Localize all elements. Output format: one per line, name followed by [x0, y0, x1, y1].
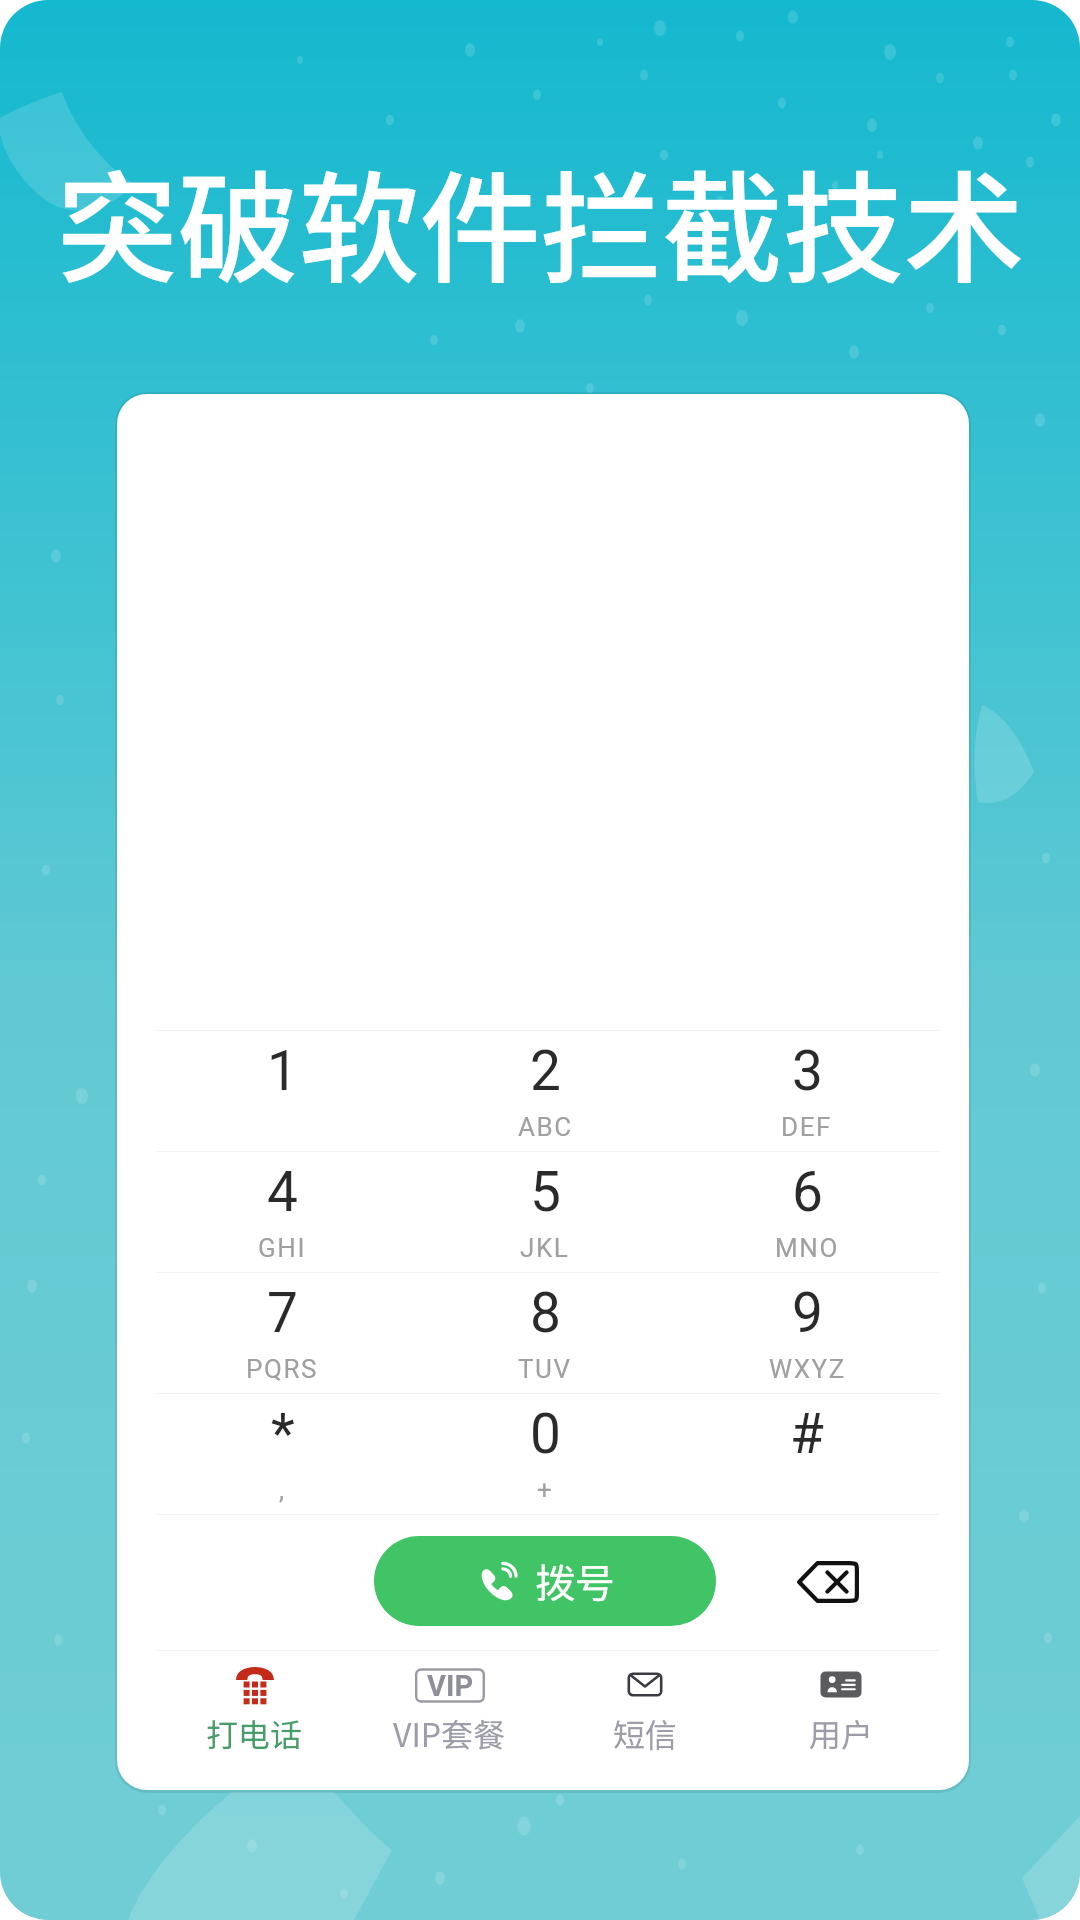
- button[interactable]: 1: [151, 1031, 414, 1151]
- staticText: *: [271, 1402, 295, 1466]
- staticText: 拨号: [535, 1552, 615, 1610]
- button[interactable]: 6: [676, 1152, 938, 1272]
- staticText: +: [537, 1475, 554, 1505]
- staticText: #: [790, 1402, 824, 1466]
- button[interactable]: 短信: [547, 1651, 743, 1790]
- button[interactable]: 9: [676, 1273, 938, 1393]
- button[interactable]: 8: [414, 1273, 676, 1393]
- staticText: JKL: [520, 1233, 570, 1263]
- staticText: GHI: [258, 1233, 307, 1263]
- button[interactable]: 7: [151, 1273, 414, 1393]
- button[interactable]: 打电话: [157, 1651, 352, 1790]
- button[interactable]: 3: [676, 1031, 938, 1151]
- staticText: 1: [267, 1039, 298, 1103]
- staticText: TUV: [518, 1354, 572, 1384]
- staticText: 4: [267, 1160, 298, 1224]
- staticText: 突破软件拦截技术: [56, 133, 1025, 308]
- button[interactable]: 拨号: [374, 1536, 716, 1626]
- staticText: VIP: [427, 1669, 474, 1703]
- staticText: 7: [267, 1281, 298, 1345]
- button[interactable]: 4: [151, 1152, 414, 1272]
- button[interactable]: VIP: [352, 1651, 547, 1790]
- staticText: 9: [792, 1281, 823, 1345]
- staticText: 2: [530, 1039, 561, 1103]
- staticText: 打电话: [206, 1710, 303, 1756]
- staticText: WXYZ: [769, 1354, 846, 1384]
- button[interactable]: #: [676, 1394, 938, 1514]
- staticText: 8: [530, 1281, 561, 1345]
- staticText: 3: [792, 1039, 823, 1103]
- button[interactable]: 2: [414, 1031, 676, 1151]
- staticText: ,: [279, 1475, 286, 1505]
- button[interactable]: *: [151, 1394, 414, 1514]
- staticText: 5: [530, 1160, 561, 1224]
- button[interactable]: Backspace: [784, 1538, 872, 1626]
- staticText: 6: [792, 1160, 823, 1224]
- staticText: 用户: [809, 1710, 874, 1756]
- staticText: 短信: [613, 1710, 678, 1756]
- staticText: VIP套餐: [393, 1710, 506, 1756]
- staticText: DEF: [781, 1112, 833, 1142]
- staticText: PQRS: [246, 1354, 319, 1384]
- staticText: MNO: [775, 1233, 839, 1263]
- button[interactable]: 0: [414, 1394, 676, 1514]
- button[interactable]: 5: [414, 1152, 676, 1272]
- staticText: ABC: [518, 1112, 573, 1142]
- staticText: 0: [530, 1402, 561, 1466]
- button[interactable]: 用户: [743, 1651, 939, 1790]
